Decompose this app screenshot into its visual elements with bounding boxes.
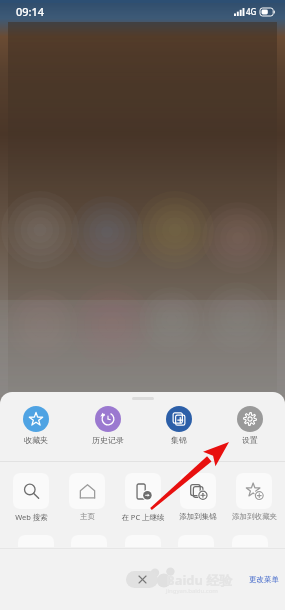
staticText: 4G xyxy=(246,6,257,17)
button[interactable]: 更改菜单 xyxy=(249,575,279,584)
button[interactable]: 主页 xyxy=(62,473,112,521)
button[interactable]: Web 搜索 xyxy=(6,473,56,522)
staticText: jingyan.baidu.com xyxy=(166,587,218,595)
button[interactable]: 设置 xyxy=(214,406,285,445)
button[interactable]: 集锦 xyxy=(143,406,214,445)
staticText: Baidu 经验 xyxy=(166,571,233,589)
staticText: 主页 xyxy=(80,512,95,521)
staticText: 设置 xyxy=(242,435,258,445)
button[interactable]: 在 PC 上继续 xyxy=(118,473,168,522)
button[interactable]: 添加到收藏夹 xyxy=(229,473,279,521)
button[interactable]: 收藏夹 xyxy=(0,406,72,445)
staticText: 添加到集锦 xyxy=(179,512,217,521)
staticText: 收藏夹 xyxy=(24,435,48,445)
button[interactable]: 关闭 xyxy=(126,571,158,588)
staticText: 在 PC 上继续 xyxy=(121,512,165,522)
staticText: 09:14 xyxy=(16,4,45,19)
staticText: 历史记录 xyxy=(92,435,124,445)
staticText: 添加到收藏夹 xyxy=(232,512,277,521)
button[interactable]: 历史记录 xyxy=(72,406,143,445)
staticText: 更改菜单 xyxy=(249,575,279,584)
staticText: Web 搜索 xyxy=(15,512,48,522)
button[interactable]: 添加到集锦 xyxy=(173,473,223,521)
staticText: 集锦 xyxy=(171,435,187,445)
